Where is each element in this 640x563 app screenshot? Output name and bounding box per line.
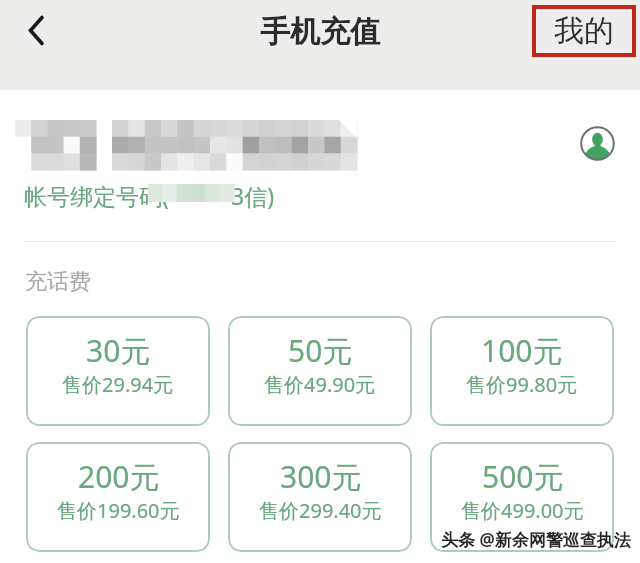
staticText: 帐号绑定号码( [24,180,169,211]
staticText: 200元 [78,456,160,497]
staticText: 手机充值 [260,13,380,51]
staticText: 售价199.60元 [57,497,180,524]
staticText: 售价29.94元 [62,371,174,398]
button[interactable]: 500元 [430,442,614,552]
button[interactable]: 我的 [532,5,636,57]
button[interactable]: 100元 [430,316,614,426]
button[interactable]: 50元 [228,316,412,426]
staticText: 100元 [481,330,563,371]
staticText: 头条 @新余网警巡查执法 [441,528,631,551]
staticText: 我的 [554,12,614,50]
staticText: 售价99.80元 [466,371,578,398]
button[interactable]: 200元 [26,442,210,552]
button[interactable]: 300元 [228,442,412,552]
staticText: 50元 [288,330,353,371]
staticText: 500元 [482,456,564,497]
staticText: 充话费 [25,268,91,296]
staticText: 30元 [86,330,151,371]
staticText: 售价49.90元 [264,371,376,398]
button[interactable]: 30元 [26,316,210,426]
staticText: 售价499.00元 [461,497,584,524]
button[interactable]: Back [7,7,65,65]
button[interactable]: Profile [580,126,615,161]
staticText: 3信) [231,180,275,211]
staticText: 300元 [280,456,362,497]
staticText: 售价299.40元 [259,497,382,524]
